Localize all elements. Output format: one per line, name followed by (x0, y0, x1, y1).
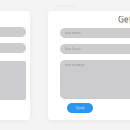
button[interactable]: Your Name (60, 28, 130, 38)
staticText: Get in touch (118, 14, 130, 25)
button[interactable]: Your Message (60, 60, 130, 99)
button[interactable]: Your Email (60, 44, 130, 54)
staticText: Your Email (65, 47, 81, 51)
staticText: Your Message (65, 63, 85, 67)
staticText: Your Name (65, 31, 81, 35)
button[interactable]: Send (67, 103, 93, 113)
staticText: Send (76, 106, 84, 110)
